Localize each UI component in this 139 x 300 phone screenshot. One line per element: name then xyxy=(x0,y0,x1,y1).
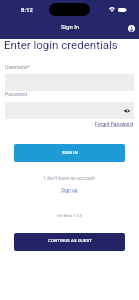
staticText: CONTINUE AS GUEST xyxy=(48,238,92,243)
button[interactable]: Profile xyxy=(128,25,135,32)
staticText: Username* xyxy=(5,64,30,70)
staticText: Sign In xyxy=(61,23,80,30)
staticText: Ver Beta 1.0.0 xyxy=(5,213,134,218)
staticText: I don't have an account xyxy=(5,175,134,181)
button[interactable]: SIGN IN xyxy=(14,144,125,162)
button[interactable]: Show password xyxy=(5,102,134,119)
staticText: Enter login credentials xyxy=(4,38,118,51)
staticText: Password xyxy=(5,91,28,97)
button[interactable]: Forgot Password xyxy=(95,121,134,127)
button[interactable]: CONTINUE AS GUEST xyxy=(14,233,125,251)
button[interactable]: Sign up xyxy=(61,187,78,193)
staticText: 8:12 xyxy=(21,6,33,13)
button[interactable]: Show password xyxy=(123,107,131,115)
staticText: SIGN IN xyxy=(62,150,78,155)
